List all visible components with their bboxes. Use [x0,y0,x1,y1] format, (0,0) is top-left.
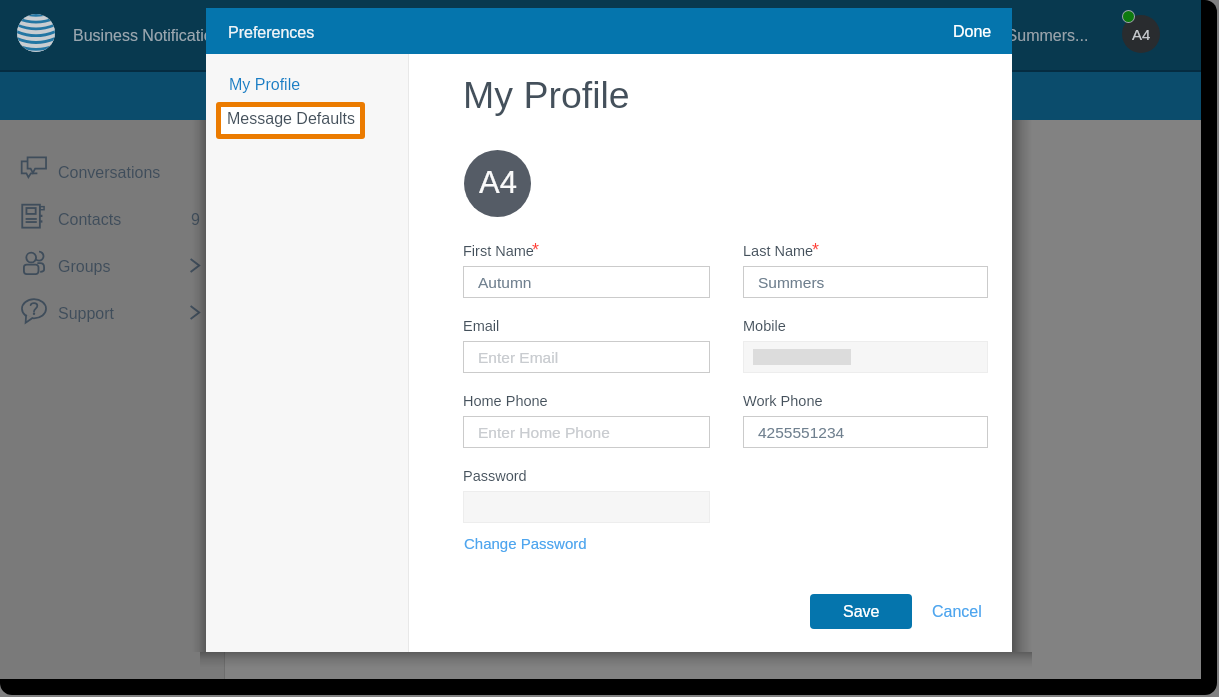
staticText: Cancel [932,603,982,621]
staticText: A4 [1132,26,1151,43]
staticText: Enter Home Phone [478,424,610,441]
staticText: Summers [758,274,825,291]
button[interactable]: Message Defaults [216,102,365,139]
staticText: Conversations [58,164,161,182]
staticText: Message Defaults [227,110,356,128]
staticText: Save [843,603,880,621]
button[interactable]: Cancel [921,594,993,630]
staticText: Groups [58,258,111,276]
staticText: Work Phone [743,393,823,409]
button[interactable]: Conversations [0,148,224,195]
button[interactable]: Save [810,594,912,629]
staticText: Enter Email [478,349,559,366]
button[interactable]: Support [0,289,224,336]
staticText: Preferences [228,24,315,42]
button[interactable]: My Profile [221,72,309,98]
staticText: * [532,240,540,260]
staticText: Mobile [743,318,786,334]
staticText: Home Phone [463,393,548,409]
button[interactable]: Account menu [1117,6,1167,56]
staticText: A4 [479,165,517,200]
button[interactable]: Contacts [0,195,224,242]
staticText: My Profile [229,76,301,94]
staticText: Change Password [464,535,587,552]
staticText: Password [463,468,527,484]
staticText: Email [463,318,500,334]
staticText: 9 [191,211,200,229]
staticText: Done [953,23,992,41]
button[interactable]: Done [933,8,1012,54]
staticText: My Profile [463,74,630,116]
staticText: Business Notifications [73,27,230,45]
button[interactable]: Groups [0,242,224,289]
staticText: Contacts [58,211,122,229]
staticText: 4255551234 [758,424,845,441]
button[interactable]: Change Password [454,528,597,559]
staticText: Last Name [743,243,814,259]
staticText: Autumn Summers... [947,27,1089,45]
staticText: * [812,240,820,260]
staticText: First Name [463,243,534,259]
staticText: Support [58,305,115,323]
staticText: Autumn [478,274,532,291]
